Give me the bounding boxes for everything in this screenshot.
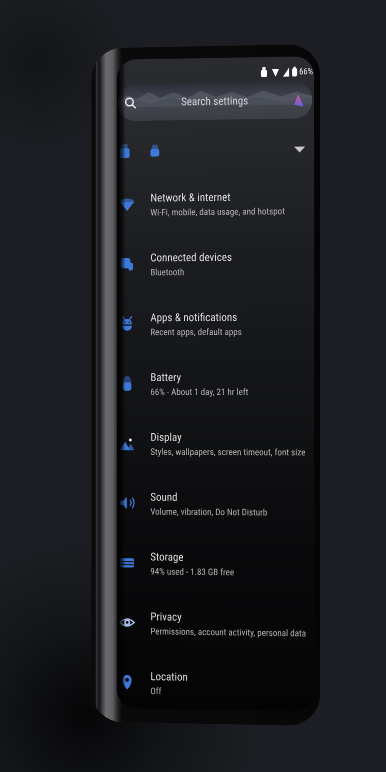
staticText: Connected devices xyxy=(150,251,233,264)
button[interactable]: Network & internet xyxy=(117,180,314,242)
button[interactable]: Display xyxy=(117,421,314,482)
staticText: Battery xyxy=(150,371,181,384)
staticText: Bluetooth xyxy=(150,267,185,278)
button[interactable]: Storage xyxy=(117,540,314,602)
other: Expand suggestions xyxy=(294,145,305,154)
staticText: Sound xyxy=(150,491,178,504)
staticText: Network & internet xyxy=(150,191,231,204)
button[interactable]: Expand suggestions xyxy=(117,137,314,162)
staticText: Privacy xyxy=(150,610,182,624)
staticText: Apps & notifications xyxy=(150,311,238,324)
button[interactable]: Privacy xyxy=(117,600,314,663)
button[interactable]: Account xyxy=(292,93,306,108)
staticText: Wi-Fi, mobile, data usage, and hotspot xyxy=(150,206,285,218)
button[interactable]: Connected devices xyxy=(117,240,314,301)
staticText: Off xyxy=(150,686,162,697)
staticText: 94% used - 1.83 GB free xyxy=(150,566,235,578)
other: SIM xyxy=(261,67,267,77)
button[interactable]: Sound xyxy=(117,480,314,542)
button[interactable]: Search settings xyxy=(118,81,312,121)
staticText: Location xyxy=(150,670,188,684)
staticText: 66% - About 1 day, 21 hr left xyxy=(150,387,249,398)
button[interactable]: Location xyxy=(117,660,314,712)
staticText: Search settings xyxy=(181,94,249,108)
button[interactable]: Apps & notifications xyxy=(117,300,314,361)
staticText: Permissions, account activity, personal … xyxy=(150,626,306,639)
staticText: Styles, wallpapers, screen timeout, font… xyxy=(150,447,306,458)
staticText: 66% xyxy=(299,66,313,76)
staticText: Display xyxy=(150,431,182,444)
other: Search xyxy=(125,97,137,109)
staticText: Storage xyxy=(150,550,184,564)
staticText: Recent apps, default apps xyxy=(150,327,242,338)
staticText: Volume, vibration, Do Not Disturb xyxy=(150,507,268,518)
button[interactable]: Battery xyxy=(117,361,314,421)
